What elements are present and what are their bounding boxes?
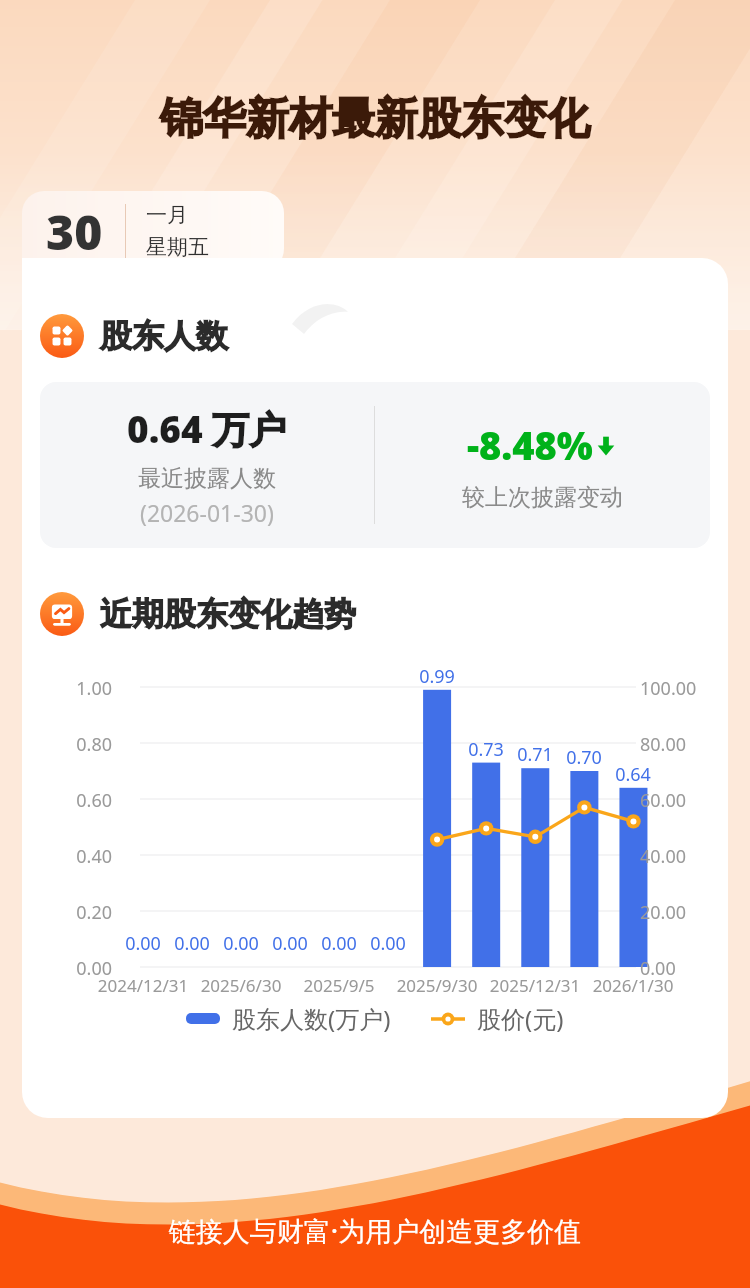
- staticText: 0.00: [640, 956, 720, 981]
- staticText: 0.00: [113, 931, 173, 956]
- staticText: 0.73: [456, 737, 516, 762]
- staticText: 0.00: [56, 956, 112, 981]
- staticText: 2026/1/30: [573, 974, 693, 997]
- staticText: 1.00: [56, 676, 112, 701]
- staticText: 80.00: [640, 732, 720, 757]
- staticText: 0.99: [407, 664, 467, 689]
- staticText: 0.20: [56, 900, 112, 925]
- staticText: 20.00: [640, 900, 720, 925]
- staticText: 0.00: [162, 931, 222, 956]
- staticText: 最近披露人数: [138, 464, 276, 493]
- staticText: 0.60: [56, 788, 112, 813]
- staticText: 2025/9/5: [279, 974, 399, 997]
- staticText: 30: [46, 199, 103, 264]
- staticText: 0.00: [211, 931, 271, 956]
- button[interactable]: 股价(元): [431, 1002, 564, 1035]
- staticText: 锦华新材最新股东变化: [0, 92, 750, 146]
- button[interactable]: 0.64 万户: [40, 382, 710, 548]
- staticText: 60.00: [640, 788, 720, 813]
- staticText: 0.40: [56, 844, 112, 869]
- staticText: 2024/12/31: [83, 974, 203, 997]
- staticText: 股价(元): [477, 1002, 564, 1035]
- staticText: 0.80: [56, 732, 112, 757]
- staticText: 0.00: [260, 931, 320, 956]
- staticText: 近期股东变化趋势: [100, 594, 356, 634]
- staticText: 2025/12/31: [475, 974, 595, 997]
- staticText: 0.64 万户: [127, 403, 287, 454]
- staticText: (2026-01-30): [140, 497, 274, 528]
- staticText: 0.00: [309, 931, 369, 956]
- staticText: 股东人数(万户): [232, 1002, 391, 1035]
- staticText: 0.00: [358, 931, 418, 956]
- staticText: 40.00: [640, 844, 720, 869]
- staticText: 100.00: [640, 676, 720, 701]
- staticText: 0.71: [505, 742, 565, 767]
- staticText: 一月: [146, 202, 188, 228]
- other: Shareholder count: [40, 314, 84, 358]
- staticText: 0.70: [554, 745, 614, 770]
- button[interactable]: Trend: [40, 592, 728, 636]
- button[interactable]: 股东人数(万户): [186, 1002, 391, 1035]
- button[interactable]: Shareholder count: [40, 314, 728, 358]
- other: Trend: [40, 592, 84, 636]
- staticText: 星期五: [146, 234, 209, 260]
- staticText: 0.64: [603, 762, 663, 787]
- staticText: 较上次披露变动: [462, 483, 623, 512]
- staticText: 股东人数: [100, 316, 228, 356]
- staticText: 链接人与财富·为用户创造更多价值: [0, 1212, 750, 1249]
- staticText: -8.48%: [467, 419, 593, 471]
- staticText: 2025/6/30: [181, 974, 301, 997]
- staticText: 2025/9/30: [377, 974, 497, 997]
